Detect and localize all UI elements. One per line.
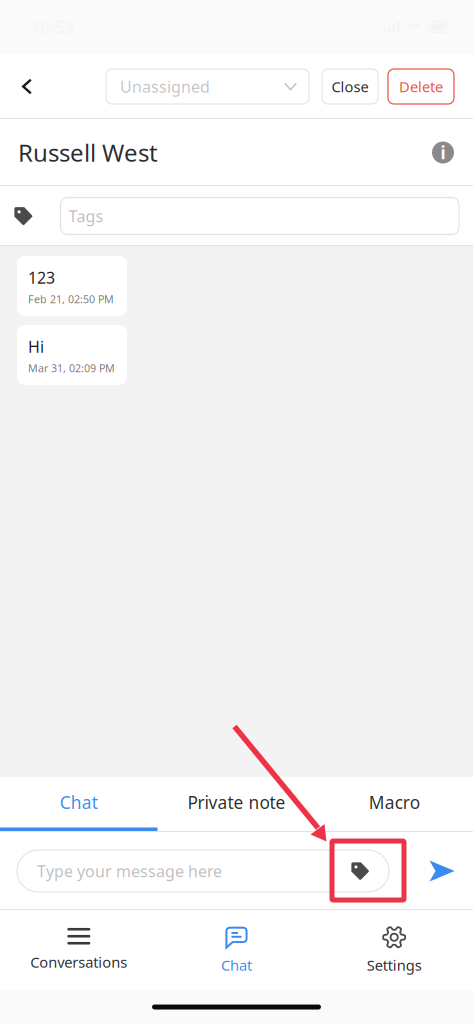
staticText: 123: [28, 267, 55, 288]
staticText: Private note: [187, 791, 285, 814]
button[interactable]: Conversations: [0, 910, 158, 990]
button[interactable]: Unassigned: [106, 69, 309, 104]
button[interactable]: Delete: [388, 69, 454, 104]
button[interactable]: Chat: [158, 910, 315, 990]
staticText: Delete: [399, 77, 443, 96]
staticText: Type your message here: [37, 860, 222, 882]
staticText: Tags: [68, 205, 103, 227]
staticText: Mar 31, 02:09 PM: [28, 361, 115, 375]
button[interactable]: Back: [5, 64, 49, 108]
staticText: Close: [331, 77, 368, 96]
staticText: Hi: [28, 336, 44, 357]
staticText: Feb 21, 02:50 PM: [28, 292, 114, 306]
button[interactable]: Conversation info: [423, 132, 463, 172]
button[interactable]: Chat: [0, 777, 158, 832]
button[interactable]: Send: [414, 850, 470, 892]
button[interactable]: Add tag: [331, 850, 389, 892]
staticText: Conversations: [30, 952, 127, 972]
staticText: Macro: [369, 791, 420, 814]
button[interactable]: Private note: [158, 777, 315, 832]
button[interactable]: Close: [322, 69, 378, 104]
button[interactable]: Settings: [315, 910, 473, 990]
button[interactable]: Macro: [315, 777, 473, 832]
button[interactable]: Tags: [60, 197, 459, 234]
staticText: Chat: [221, 955, 252, 975]
staticText: i: [440, 141, 445, 164]
staticText: Chat: [60, 791, 98, 814]
staticText: Unassigned: [120, 76, 210, 97]
staticText: Settings: [367, 955, 422, 975]
staticText: Russell West: [18, 137, 158, 168]
